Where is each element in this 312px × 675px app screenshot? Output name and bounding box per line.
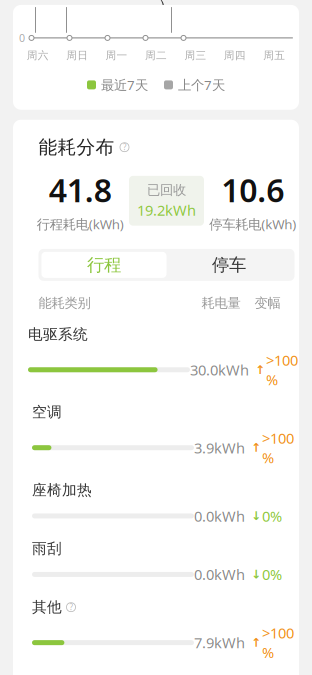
staticText: 周三 [184, 49, 206, 62]
staticText: ↑ [251, 636, 261, 649]
staticText: ↑ [251, 441, 261, 454]
staticText: 0.0kWh [194, 506, 245, 526]
staticText: 能耗类别 [38, 295, 90, 311]
staticText: 41.8 [49, 169, 112, 211]
staticText: 雨刮 [32, 540, 62, 558]
staticText: 0% [262, 565, 282, 584]
staticText: 周一 [106, 49, 128, 62]
staticText: 停车 [212, 254, 246, 275]
staticText: 电驱系统 [28, 325, 88, 343]
staticText: 30.0kWh [190, 360, 249, 379]
staticText: 上个7天 [178, 76, 225, 94]
button[interactable]: 停车 [166, 252, 291, 278]
staticText: 周六 [27, 49, 49, 62]
staticText: 行程 [87, 254, 121, 275]
staticText: 周二 [145, 49, 167, 62]
staticText: 0.0kWh [194, 565, 245, 584]
button[interactable]: 最近7天（02.28~03.06） [158, 0, 292, 25]
staticText: 0 [19, 31, 25, 45]
button[interactable]: 行程 [41, 252, 166, 278]
staticText: 行程耗电(kWh) [37, 215, 124, 233]
staticText: 周四 [224, 49, 246, 62]
staticText: 耗电量 [201, 295, 240, 311]
staticText: 19.2kWh [137, 200, 196, 220]
staticText: 周日 [66, 49, 88, 62]
staticText: >100% [262, 623, 294, 662]
staticText: ? [123, 142, 126, 152]
staticText: >100% [266, 350, 298, 389]
staticText: 空调 [32, 403, 62, 421]
staticText: 最近7天 [101, 76, 148, 94]
staticText: >100% [262, 428, 294, 467]
staticText: ? [69, 602, 72, 612]
staticText: 7.9kWh [194, 633, 245, 652]
staticText: 已回收 [147, 182, 186, 198]
staticText: 其他 [32, 598, 62, 616]
staticText: ↓ [251, 568, 261, 581]
staticText: 座椅加热 [32, 481, 92, 499]
staticText: 3.9kWh [194, 438, 245, 457]
staticText: 10.6 [221, 169, 284, 211]
staticText: ↑ [255, 363, 265, 376]
staticText: 停车耗电(kWh) [209, 215, 296, 233]
staticText: 0% [262, 506, 282, 526]
staticText: 周五 [263, 49, 285, 62]
staticText: 最近7天（02.28~03.06） [158, 0, 275, 17]
staticText: 变幅 [254, 295, 280, 311]
staticText: 能耗分布 [38, 136, 114, 159]
staticText: ↓ [251, 509, 261, 523]
